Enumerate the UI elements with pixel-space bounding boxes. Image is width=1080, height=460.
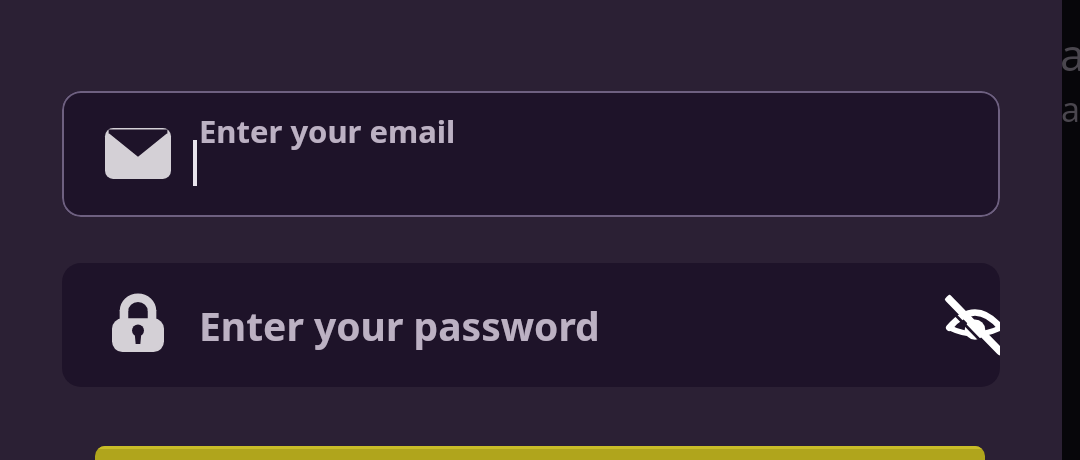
button[interactable]: Enter your email <box>62 91 1000 217</box>
button[interactable]: Enter your password <box>62 263 1000 387</box>
staticText: a <box>1060 24 1078 84</box>
button[interactable]: Log in <box>95 446 985 460</box>
staticText: Enter your email <box>199 110 456 152</box>
staticText: a <box>1061 86 1079 132</box>
button[interactable]: Show password <box>935 285 1000 365</box>
staticText: Enter your password <box>199 299 600 352</box>
